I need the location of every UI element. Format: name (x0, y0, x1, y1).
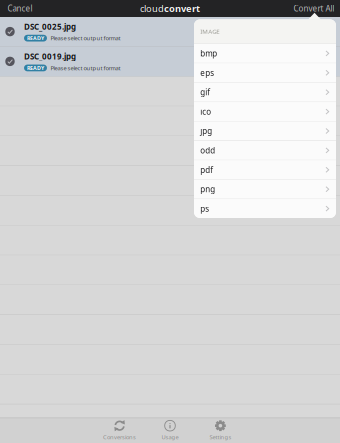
staticText: ico (200, 106, 211, 117)
staticText: READY (27, 64, 44, 72)
staticText: Please select output format (51, 34, 121, 42)
staticText: gif (200, 87, 210, 98)
button[interactable]: Usage (145, 418, 195, 443)
staticText: png (200, 184, 215, 195)
staticText: Please select output format (51, 64, 121, 72)
staticText: Cancel (7, 3, 32, 14)
button[interactable]: DSC_0019.jpg (0, 47, 340, 76)
button[interactable]: gif (194, 83, 336, 102)
button[interactable]: Cancel (0, 0, 42, 17)
staticText: Usage (161, 433, 178, 441)
staticText: bmp (200, 48, 217, 59)
staticText: DSC_0025.jpg (24, 21, 76, 32)
button[interactable]: Settings (195, 418, 246, 443)
button[interactable]: odd (194, 141, 336, 160)
staticText: DSC_0019.jpg (24, 51, 76, 62)
button[interactable]: ico (194, 102, 336, 121)
button[interactable]: Convert All (283, 0, 340, 17)
staticText: pdf (200, 164, 213, 175)
button[interactable]: eps (194, 63, 336, 82)
button[interactable]: png (194, 180, 336, 199)
button[interactable]: DSC_0025.jpg (0, 17, 340, 46)
button[interactable]: pdf (194, 160, 336, 179)
staticText: Conversions (103, 433, 136, 441)
staticText: READY (27, 34, 44, 42)
staticText: cloudconvert (140, 2, 200, 15)
button[interactable]: jpg (194, 122, 336, 140)
button[interactable]: ps (194, 199, 336, 218)
button[interactable]: Conversions (94, 418, 145, 443)
staticText: IMAGE (200, 27, 219, 36)
staticText: Convert All (293, 3, 334, 14)
staticText: jpg (200, 126, 212, 136)
staticText: eps (200, 67, 214, 78)
staticText: odd (200, 145, 215, 156)
staticText: Settings (209, 433, 231, 441)
button[interactable]: bmp (194, 44, 336, 63)
staticText: ps (200, 203, 209, 214)
